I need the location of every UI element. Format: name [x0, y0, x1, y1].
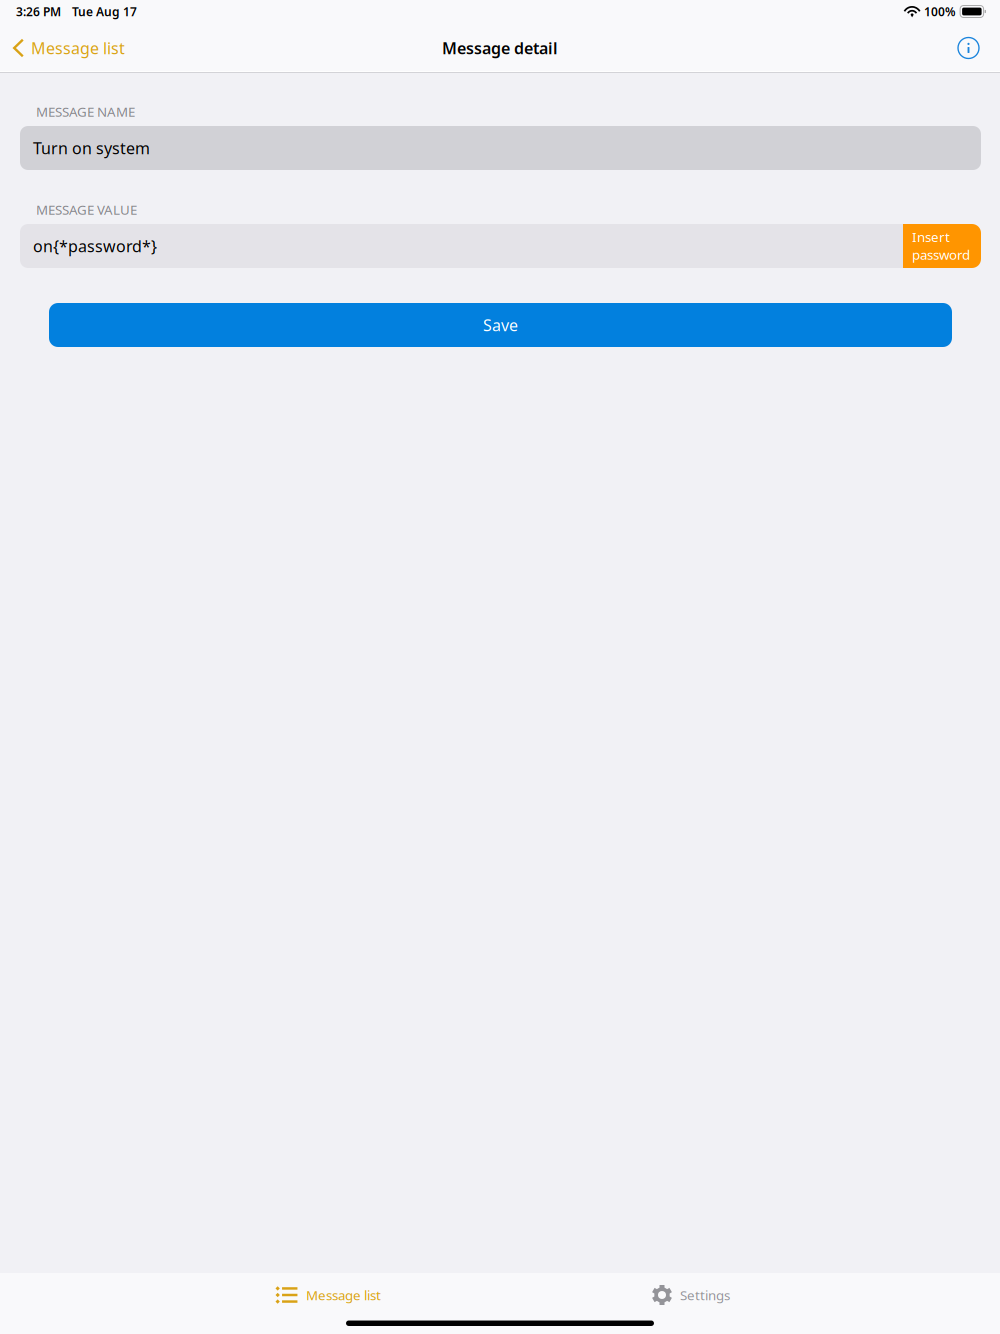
button[interactable]: Insert	[903, 224, 981, 268]
staticText: Message list	[31, 37, 125, 59]
staticText: 100%	[924, 3, 956, 19]
staticText: Settings	[680, 1286, 730, 1304]
staticText: password	[912, 246, 970, 263]
staticText: 3:26 PM	[16, 3, 61, 19]
button[interactable]: Settings	[642, 1273, 740, 1317]
staticText: MESSAGE VALUE	[36, 201, 137, 218]
staticText: Insert	[912, 228, 950, 246]
button[interactable]: Save	[49, 303, 952, 347]
staticText: Turn on system	[33, 137, 150, 159]
staticText: Tue Aug 17	[72, 3, 137, 19]
staticText: Save	[483, 314, 518, 336]
button[interactable]: Message list	[266, 1273, 391, 1317]
staticText: on{*password*}	[33, 235, 157, 257]
staticText: Message list	[306, 1286, 381, 1304]
staticText: Message detail	[442, 37, 558, 59]
button[interactable]: Message list	[0, 25, 137, 71]
button[interactable]: Info	[944, 25, 1000, 71]
staticText: MESSAGE NAME	[36, 103, 135, 120]
